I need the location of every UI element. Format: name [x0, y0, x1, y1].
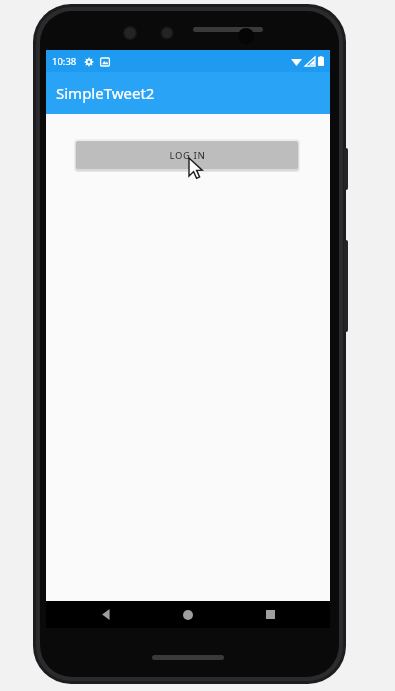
staticText: 10:38 [52, 55, 77, 68]
staticText: LOG IN [169, 149, 206, 162]
staticText: SimpleTweet2 [56, 83, 155, 103]
button[interactable]: Home [166, 601, 210, 628]
button[interactable]: Back [84, 601, 128, 628]
button[interactable]: Recent apps [248, 601, 292, 628]
button[interactable]: LOG IN [76, 141, 298, 169]
